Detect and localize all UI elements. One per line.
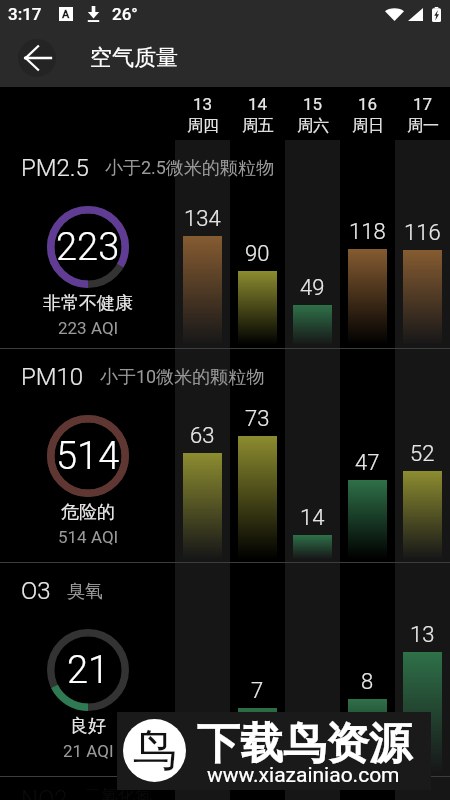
staticText: 118 — [349, 219, 386, 245]
staticText: 小于10微米的颗粒物 — [100, 366, 265, 389]
staticText: 周五 — [242, 116, 274, 136]
staticText: 49 — [300, 275, 325, 301]
staticText: 514 AQI — [58, 527, 119, 547]
staticText: 134 — [184, 206, 221, 232]
staticText: 14 — [248, 94, 268, 114]
staticText: NO2 — [21, 785, 68, 800]
staticText: 臭氧 — [67, 580, 103, 603]
staticText: 223 — [56, 225, 120, 270]
staticText: 13 — [193, 94, 213, 114]
staticText: 47 — [355, 450, 380, 476]
staticText: 116 — [404, 220, 441, 246]
staticText: 良好 — [70, 715, 106, 738]
staticText: 小于2.5微米的颗粒物 — [105, 157, 274, 180]
staticText: 15 — [303, 94, 323, 114]
staticText: 13 — [410, 622, 435, 648]
staticText: 21 AQI — [63, 741, 114, 761]
staticText: 周六 — [297, 116, 329, 136]
staticText: 危险的 — [61, 501, 115, 524]
staticText: A — [62, 8, 70, 21]
staticText: 非常不健康 — [43, 292, 133, 315]
staticText: PM2.5 — [21, 154, 89, 182]
staticText: 52 — [410, 441, 435, 467]
staticText: 8 — [361, 669, 374, 695]
staticText: 16 — [358, 94, 378, 114]
staticText: 3:17 — [8, 4, 42, 24]
staticText: 周日 — [352, 116, 384, 136]
staticText: 鸟 — [133, 723, 177, 778]
staticText: 514 — [56, 434, 120, 479]
staticText: 21 — [67, 648, 110, 693]
staticText: PM10 — [21, 363, 84, 391]
staticText: 26° — [112, 4, 138, 24]
staticText: 17 — [413, 94, 433, 114]
staticText: 14 — [300, 505, 325, 531]
staticText: 周四 — [187, 116, 219, 136]
staticText: O3 — [21, 577, 51, 605]
staticText: 63 — [190, 423, 215, 449]
staticText: 二氧化氮 — [84, 785, 152, 800]
staticText: 空气质量 — [90, 44, 178, 72]
staticText: 7 — [251, 678, 264, 704]
staticText: 周一 — [407, 116, 439, 136]
staticText: www.xiazainiao.com — [207, 763, 400, 788]
staticText: 73 — [245, 406, 270, 432]
staticText: 223 AQI — [58, 318, 119, 338]
button[interactable]: 返回 — [18, 39, 56, 77]
staticText: 90 — [245, 241, 270, 267]
staticText: 下载鸟资源 — [197, 717, 412, 771]
